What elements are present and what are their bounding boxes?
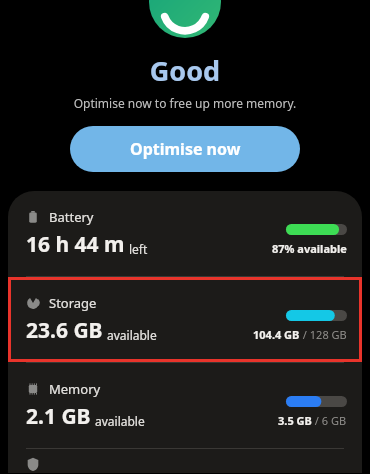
staticText: 16 h 44 m — [26, 230, 125, 259]
staticText: Battery — [49, 208, 94, 226]
staticText: 104.4 GB — [253, 327, 300, 342]
staticText: available — [95, 413, 145, 429]
staticText: Optimise now to free up more memory. — [0, 95, 370, 111]
staticText: Good — [0, 52, 370, 89]
button[interactable]: Battery — [8, 191, 362, 276]
button[interactable]: Storage — [8, 277, 362, 362]
staticText: Memory — [49, 380, 101, 398]
staticText: Optimise now — [130, 138, 241, 160]
staticText: Storage — [49, 294, 97, 312]
button[interactable]: Optimise now — [70, 126, 300, 172]
staticText: 87% available — [272, 241, 347, 256]
staticText: 23.6 GB — [26, 316, 103, 345]
staticText: / 128 GB — [300, 327, 347, 342]
other: Storage — [26, 296, 40, 310]
staticText: left — [129, 241, 148, 257]
staticText: 3.5 GB — [278, 413, 312, 428]
button[interactable]: Memory — [8, 363, 362, 448]
other: Security — [26, 457, 40, 471]
staticText: available — [107, 327, 157, 343]
other: Memory — [26, 382, 40, 396]
staticText: / 6 GB — [312, 413, 347, 428]
other: Battery — [26, 210, 40, 224]
staticText: 2.1 GB — [26, 402, 91, 431]
button[interactable]: Security — [8, 449, 362, 473]
